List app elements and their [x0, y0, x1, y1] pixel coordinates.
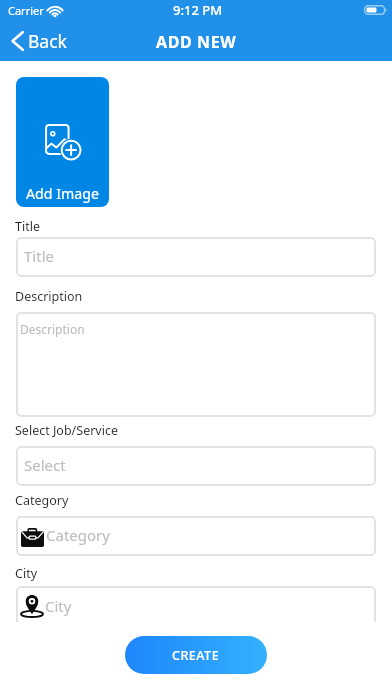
staticText: 9:12 PM	[173, 1, 223, 19]
button[interactable]: Back	[11, 29, 67, 53]
staticText: Category	[15, 492, 69, 509]
button[interactable]: Select	[16, 446, 376, 486]
staticText: Add Image	[26, 184, 99, 203]
staticText: Back	[28, 29, 67, 53]
staticText: Description	[15, 288, 83, 305]
staticText: Carrier	[8, 3, 44, 18]
staticText: Title	[15, 218, 40, 235]
button[interactable]: CREATE	[125, 636, 267, 674]
button[interactable]: Add Image	[16, 77, 109, 207]
staticText: City	[45, 596, 72, 616]
staticText: ADD NEW	[156, 31, 237, 53]
staticText: Description	[20, 321, 85, 337]
button[interactable]: Title	[16, 237, 376, 277]
staticText: Select Job/Service	[15, 422, 118, 439]
staticText: City	[15, 565, 38, 582]
button[interactable]: Category	[16, 516, 376, 556]
staticText: Category	[46, 525, 110, 545]
staticText: CREATE	[172, 647, 220, 664]
staticText: Title	[24, 246, 54, 266]
button[interactable]: City	[16, 586, 376, 622]
staticText: Select	[24, 455, 66, 475]
button[interactable]: Description	[16, 312, 376, 417]
